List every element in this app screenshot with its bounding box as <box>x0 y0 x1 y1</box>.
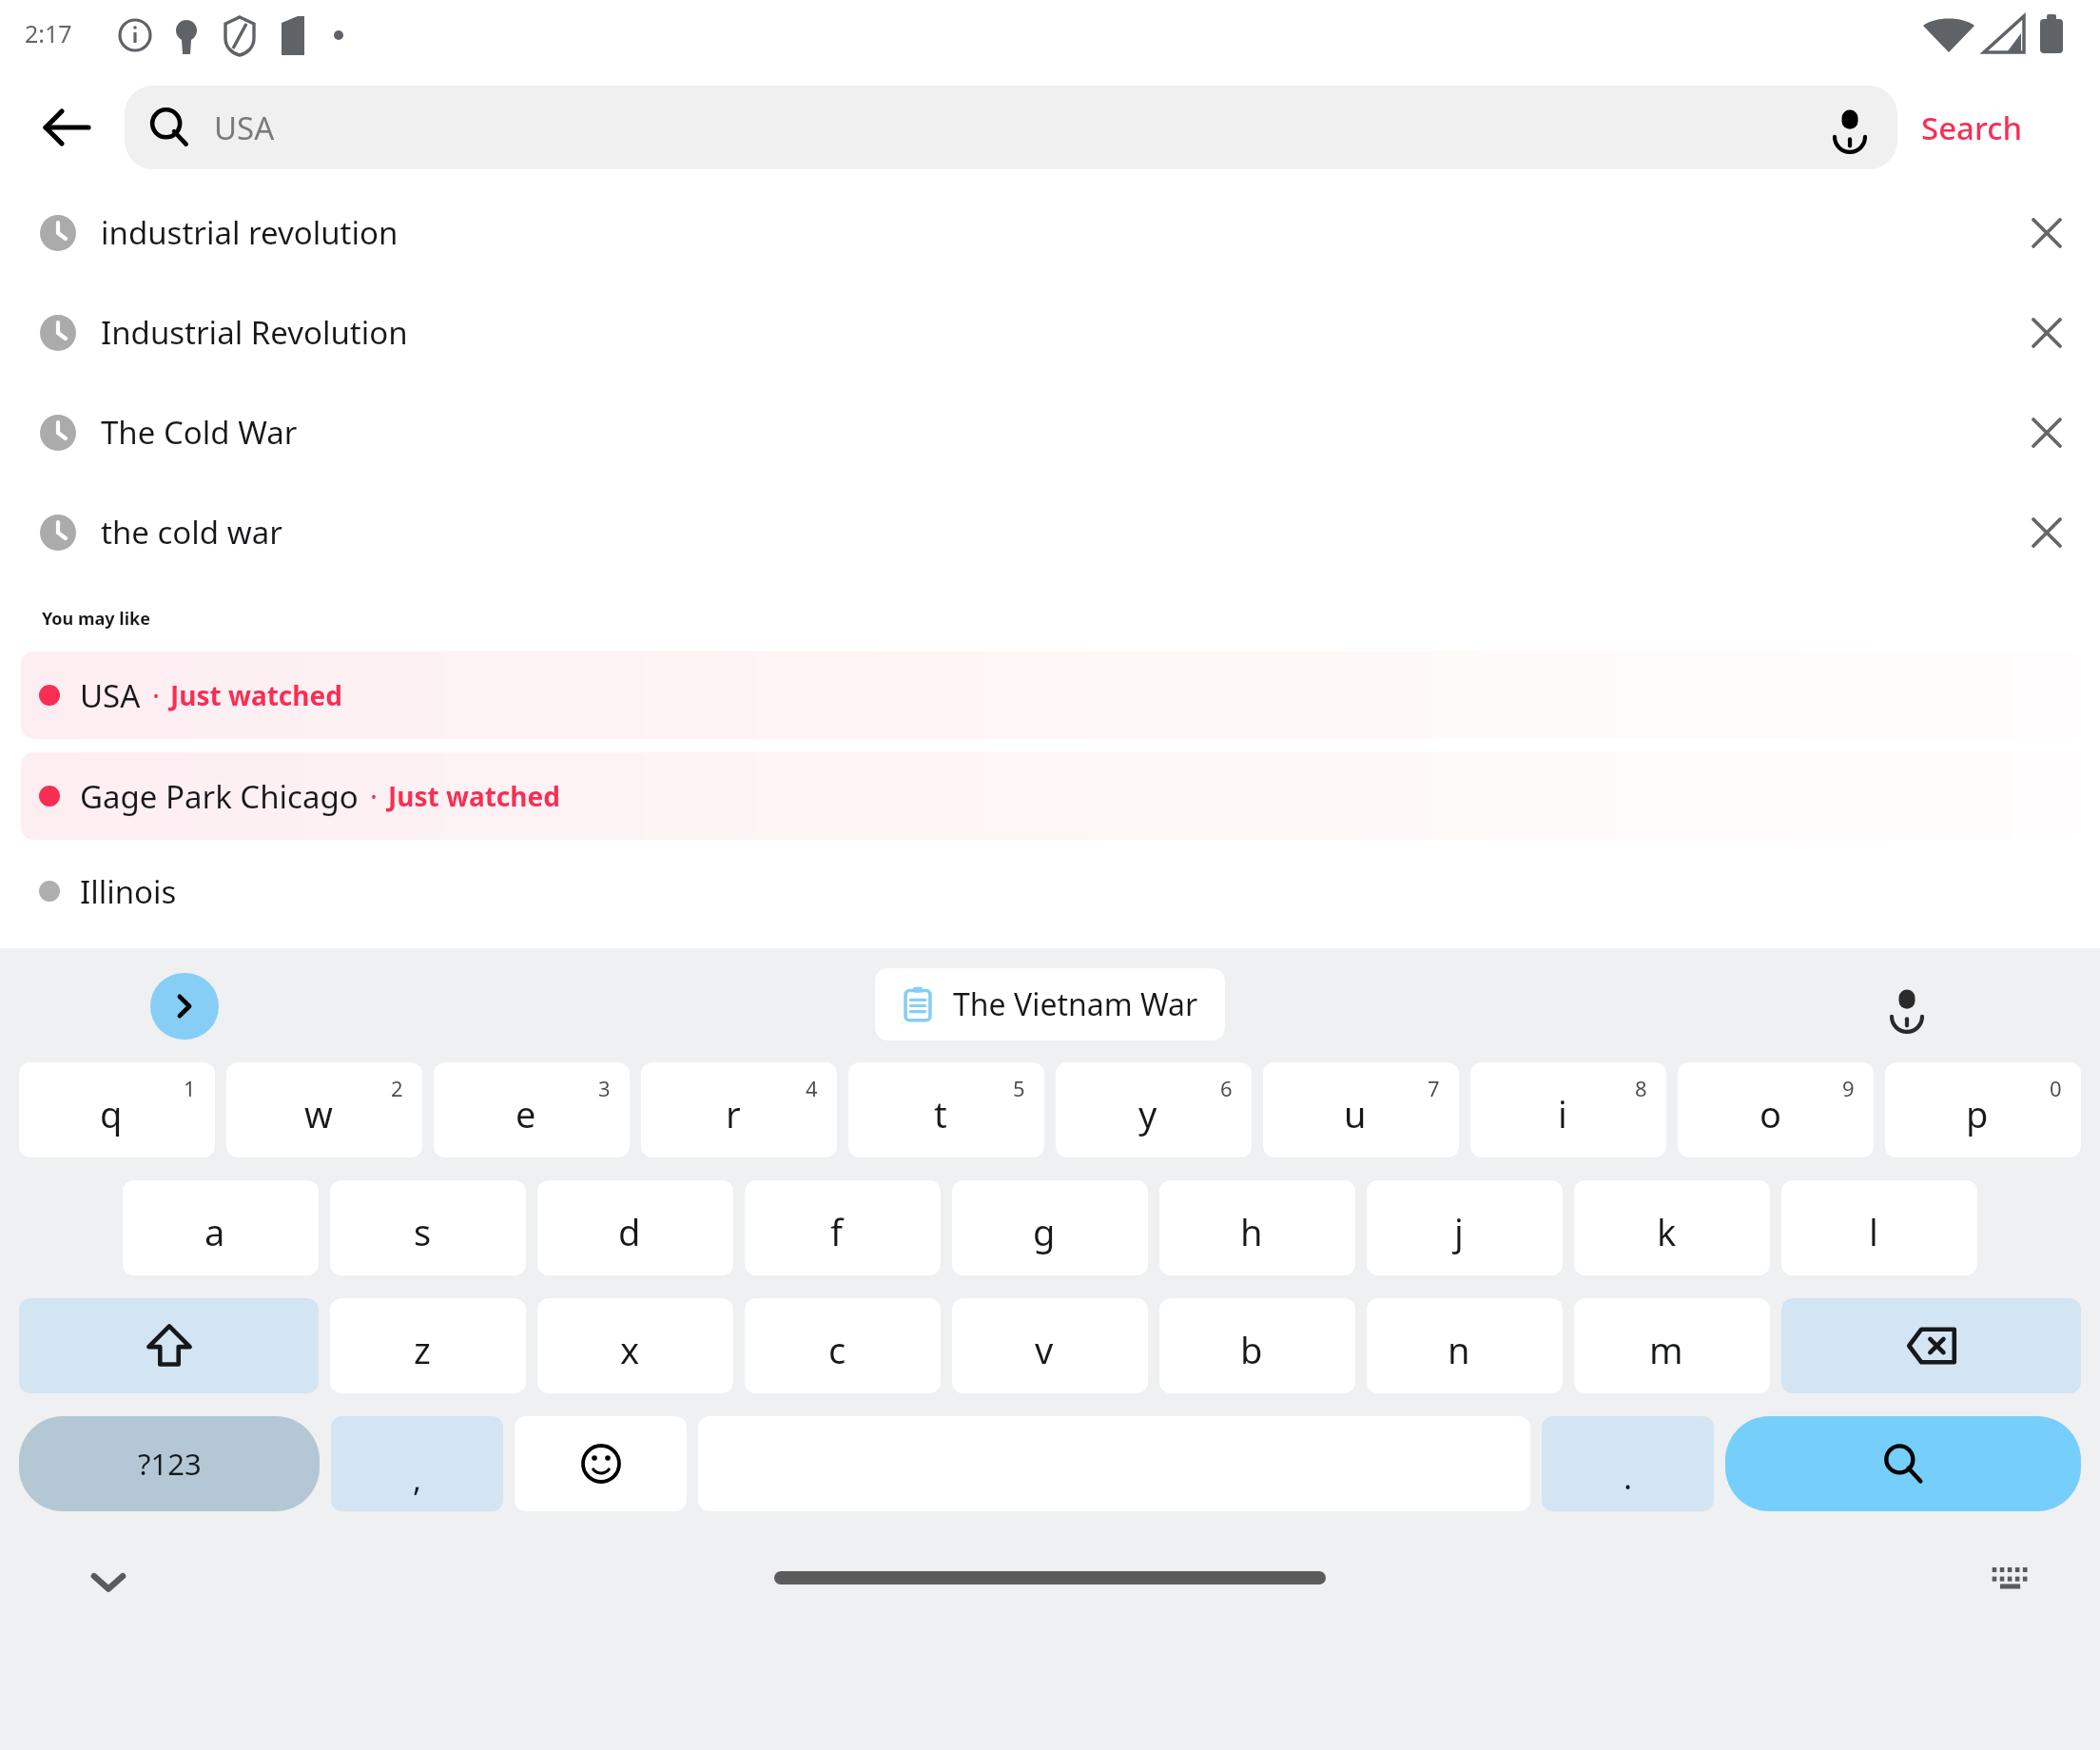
button[interactable]: Voice search <box>1808 86 1892 169</box>
button[interactable]: y <box>1056 1062 1252 1157</box>
staticText: the cold war <box>101 511 282 554</box>
staticText: m <box>1649 1325 1683 1374</box>
button[interactable]: Period <box>1542 1416 1714 1511</box>
staticText: 9 <box>1842 1074 1855 1102</box>
button[interactable]: Emoji <box>515 1416 687 1511</box>
staticText: USA <box>80 674 141 717</box>
staticText: Industrial Revolution <box>101 311 408 354</box>
button[interactable]: Expand suggestions <box>150 973 219 1040</box>
button[interactable]: h <box>1159 1180 1355 1275</box>
staticText: · <box>370 777 379 816</box>
staticText: 7 <box>1428 1074 1440 1102</box>
staticText: Gage Park Chicago <box>80 775 359 818</box>
staticText: industrial revolution <box>101 211 399 254</box>
button[interactable]: Remove Industrial Revolution <box>1997 283 2096 382</box>
button[interactable]: Remove The Cold War <box>1997 383 2096 482</box>
button[interactable]: a <box>123 1180 319 1275</box>
button[interactable]: Backspace <box>1781 1298 2081 1393</box>
staticText: r <box>726 1089 741 1138</box>
staticText: b <box>1240 1325 1263 1374</box>
button[interactable]: o <box>1678 1062 1874 1157</box>
button[interactable]: ?123 <box>19 1416 320 1511</box>
button[interactable]: Voice input <box>1869 969 1945 1045</box>
staticText: Illinois <box>80 870 177 913</box>
button[interactable]: g <box>952 1180 1148 1275</box>
button[interactable]: Illinois <box>21 855 2079 927</box>
button[interactable]: Remove industrial revolution <box>1997 184 2096 282</box>
staticText: u <box>1344 1089 1367 1138</box>
button[interactable]: j <box>1367 1180 1563 1275</box>
staticText: w <box>304 1089 333 1138</box>
staticText: . <box>1624 1455 1633 1499</box>
staticText: i <box>1558 1089 1567 1138</box>
staticText: q <box>100 1089 123 1138</box>
button[interactable]: Remove the cold war <box>1997 483 2096 582</box>
staticText: j <box>1454 1207 1464 1256</box>
button[interactable]: u <box>1263 1062 1459 1157</box>
button[interactable]: USA <box>125 86 1897 169</box>
button[interactable]: USA <box>21 651 2079 739</box>
staticText: You may like <box>42 607 150 631</box>
button[interactable]: t <box>848 1062 1044 1157</box>
staticText: ?123 <box>138 1444 202 1484</box>
button[interactable]: Hide keyboard <box>67 1540 150 1624</box>
button[interactable]: m <box>1574 1298 1770 1393</box>
staticText: 0 <box>2050 1074 2062 1102</box>
staticText: 8 <box>1635 1074 1647 1102</box>
button[interactable]: z <box>330 1298 526 1393</box>
button[interactable]: the cold war <box>0 482 2100 582</box>
staticText: Just watched <box>170 677 342 713</box>
button[interactable]: v <box>952 1298 1148 1393</box>
staticText: l <box>1869 1207 1878 1256</box>
button[interactable]: k <box>1574 1180 1770 1275</box>
button[interactable]: s <box>330 1180 526 1275</box>
button[interactable]: Search <box>1921 86 2100 169</box>
button[interactable]: Back <box>19 84 114 171</box>
staticText: · <box>152 676 161 715</box>
button[interactable]: b <box>1159 1298 1355 1393</box>
button[interactable]: r <box>641 1062 837 1157</box>
button[interactable]: Industrial Revolution <box>0 282 2100 382</box>
button[interactable]: Search <box>1725 1416 2081 1511</box>
button[interactable]: l <box>1781 1180 1977 1275</box>
button[interactable]: w <box>226 1062 422 1157</box>
button[interactable]: Switch keyboard <box>1971 1538 2051 1618</box>
staticText: k <box>1657 1207 1677 1256</box>
staticText: o <box>1760 1089 1781 1138</box>
staticText: c <box>828 1325 846 1374</box>
staticText: g <box>1033 1207 1056 1256</box>
staticText: 5 <box>1013 1074 1025 1102</box>
staticText: t <box>934 1089 947 1138</box>
button[interactable]: Home <box>774 1571 1326 1585</box>
button[interactable]: c <box>745 1298 941 1393</box>
button[interactable]: e <box>434 1062 630 1157</box>
button[interactable]: The Vietnam War <box>875 968 1225 1040</box>
staticText: n <box>1448 1325 1470 1374</box>
button[interactable]: Gage Park Chicago <box>21 752 2079 840</box>
staticText: 4 <box>806 1074 818 1102</box>
staticText: h <box>1240 1207 1263 1256</box>
button[interactable]: industrial revolution <box>0 183 2100 282</box>
button[interactable]: d <box>537 1180 733 1275</box>
button[interactable]: p <box>1885 1062 2081 1157</box>
staticText: a <box>204 1207 225 1256</box>
button[interactable]: Shift <box>19 1298 319 1393</box>
staticText: p <box>1966 1089 1989 1138</box>
staticText: 6 <box>1220 1074 1233 1102</box>
button[interactable]: x <box>537 1298 733 1393</box>
button[interactable]: The Cold War <box>0 382 2100 482</box>
staticText: 2 <box>391 1074 403 1102</box>
staticText: e <box>515 1089 536 1138</box>
staticText: , <box>413 1457 422 1501</box>
button[interactable]: i <box>1470 1062 1666 1157</box>
button[interactable]: f <box>745 1180 941 1275</box>
staticText: The Cold War <box>101 411 298 454</box>
button[interactable]: n <box>1367 1298 1563 1393</box>
staticText: z <box>414 1325 431 1374</box>
staticText: x <box>620 1325 640 1374</box>
staticText: 1 <box>184 1074 196 1102</box>
staticText: y <box>1138 1089 1157 1138</box>
button[interactable]: q <box>19 1062 215 1157</box>
button[interactable]: Comma <box>331 1416 503 1511</box>
